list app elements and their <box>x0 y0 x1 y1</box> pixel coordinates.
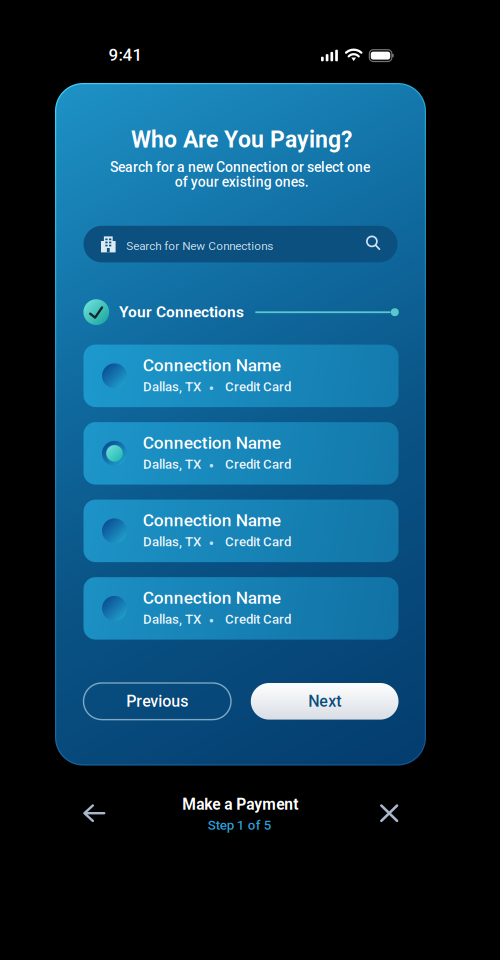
button[interactable]: Previous <box>83 683 231 720</box>
staticText: Search for a new Connection or select on… <box>110 159 370 175</box>
staticText: Dallas, TX <box>143 457 201 472</box>
button[interactable]: Next <box>251 683 398 720</box>
button[interactable]: Connection Name <box>83 577 398 640</box>
staticText: Credit Card <box>225 457 291 472</box>
staticText: Dallas, TX <box>143 534 201 550</box>
staticText: Previous <box>126 692 188 711</box>
staticText: Connection Name <box>143 355 281 375</box>
button[interactable]: Search for New Connections <box>83 226 397 262</box>
button[interactable]: Back <box>72 791 116 835</box>
staticText: Search for New Connections <box>126 239 273 253</box>
staticText: Connection Name <box>143 588 281 608</box>
staticText: 9:41 <box>108 45 142 65</box>
staticText: Make a Payment <box>182 795 298 814</box>
staticText: Who Are You Paying? <box>131 126 352 153</box>
button[interactable]: Close <box>367 791 411 835</box>
staticText: Dallas, TX <box>143 379 201 395</box>
staticText: Connection Name <box>143 433 281 453</box>
staticText: Credit Card <box>225 612 291 627</box>
staticText: Dallas, TX <box>143 612 201 627</box>
staticText: Your Connections <box>119 303 244 321</box>
button[interactable]: Connection Name <box>83 422 398 485</box>
staticText: Step 1 of 5 <box>208 817 272 833</box>
button[interactable]: Connection Name <box>83 345 398 407</box>
staticText: Credit Card <box>225 379 291 395</box>
staticText: of your existing ones. <box>175 174 309 190</box>
button[interactable]: Connection Name <box>83 500 398 562</box>
staticText: Next <box>308 692 341 711</box>
staticText: Credit Card <box>225 534 291 550</box>
staticText: Connection Name <box>143 510 281 530</box>
